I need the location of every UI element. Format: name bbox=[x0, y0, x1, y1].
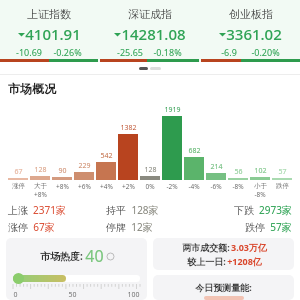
staticText: 2973家 bbox=[259, 203, 292, 217]
staticText: -0.26% bbox=[53, 46, 82, 58]
staticText: -6% bbox=[210, 182, 222, 191]
staticText: 67 bbox=[14, 167, 23, 177]
staticText: 3.03万亿 bbox=[231, 241, 267, 253]
button[interactable]: 下跌 bbox=[199, 203, 292, 217]
button[interactable]: 深证成指 bbox=[100, 0, 199, 62]
staticText: 上证指数 bbox=[27, 7, 71, 21]
button[interactable]: 市场热度滑块 bbox=[13, 273, 24, 284]
staticText: -2% bbox=[166, 182, 178, 191]
staticText: 682 bbox=[188, 146, 201, 156]
staticText: 128家 bbox=[131, 203, 159, 217]
staticText: 100 bbox=[127, 290, 140, 300]
staticText: 40 bbox=[85, 245, 104, 267]
staticText: 90 bbox=[58, 166, 67, 176]
staticText: 67家 bbox=[33, 220, 55, 234]
button[interactable]: 持平 bbox=[106, 203, 199, 217]
staticText: -4% bbox=[188, 182, 200, 191]
staticText: 跌停 bbox=[245, 221, 265, 234]
staticText: 57 bbox=[278, 167, 287, 177]
button[interactable]: 上涨 bbox=[8, 203, 106, 217]
staticText: 56 bbox=[234, 167, 243, 177]
staticText: 创业板指 bbox=[229, 7, 273, 21]
button[interactable]: 两市成交额: bbox=[153, 238, 294, 270]
staticText: 229 bbox=[78, 161, 91, 171]
staticText: 2371家 bbox=[33, 203, 66, 217]
staticText: 102 bbox=[254, 166, 267, 176]
staticText: 涨停 bbox=[12, 182, 25, 190]
staticText: 14281.08 bbox=[121, 24, 186, 44]
staticText: 542 bbox=[100, 151, 113, 161]
staticText: +2% bbox=[122, 182, 135, 191]
staticText: 下跌 bbox=[234, 204, 254, 217]
button[interactable]: 涨停 bbox=[8, 220, 106, 234]
staticText: 上涨 bbox=[8, 204, 28, 217]
staticText: 两市成交额: bbox=[181, 241, 231, 253]
staticText: 57家 bbox=[270, 220, 292, 234]
button[interactable]: 创业板指 bbox=[201, 0, 300, 62]
staticText: 停牌 bbox=[106, 221, 126, 234]
staticText: 大于 bbox=[34, 182, 47, 190]
staticText: +4% bbox=[100, 182, 113, 191]
staticText: -25.65 bbox=[117, 46, 143, 58]
staticText: 1382 bbox=[120, 123, 137, 133]
other: 说明 bbox=[107, 253, 114, 260]
button[interactable]: 停牌 bbox=[106, 220, 199, 234]
staticText: +8% bbox=[34, 190, 47, 199]
staticText: 0 bbox=[13, 290, 18, 300]
staticText: 较上一日: bbox=[186, 255, 227, 267]
button[interactable]: 今日预测量能: bbox=[153, 275, 294, 300]
staticText: 12家 bbox=[131, 220, 153, 234]
staticText: +1208亿 bbox=[227, 255, 262, 267]
staticText: 128 bbox=[144, 165, 157, 175]
staticText: 今日预测量能: bbox=[195, 281, 252, 293]
staticText: 市场热度: bbox=[40, 249, 83, 263]
staticText: -8% bbox=[254, 190, 266, 199]
staticText: -8% bbox=[232, 182, 244, 191]
staticText: +8% bbox=[56, 182, 69, 191]
staticText: -0.18% bbox=[153, 46, 182, 58]
staticText: 4101.91 bbox=[25, 24, 81, 44]
staticText: 0% bbox=[145, 182, 155, 191]
staticText: 1919 bbox=[164, 105, 181, 115]
staticText: -0.20% bbox=[251, 46, 280, 58]
staticText: 市场概况 bbox=[8, 81, 56, 96]
staticText: 小于 bbox=[254, 182, 267, 190]
staticText: 128 bbox=[34, 165, 47, 175]
staticText: 持平 bbox=[106, 204, 126, 217]
staticText: -6.9 bbox=[221, 46, 237, 58]
staticText: 214 bbox=[210, 162, 223, 172]
staticText: +6% bbox=[78, 182, 91, 191]
button[interactable]: 跌停 bbox=[199, 220, 292, 234]
button[interactable]: 市场热度: bbox=[6, 238, 147, 300]
staticText: 深证成指 bbox=[128, 7, 172, 21]
button[interactable]: 上证指数 bbox=[0, 0, 98, 62]
staticText: 跌停 bbox=[276, 182, 289, 190]
staticText: -10.69 bbox=[16, 46, 42, 58]
staticText: 50 bbox=[68, 290, 77, 300]
staticText: 3361.02 bbox=[226, 24, 282, 44]
staticText: 涨停 bbox=[8, 221, 28, 234]
